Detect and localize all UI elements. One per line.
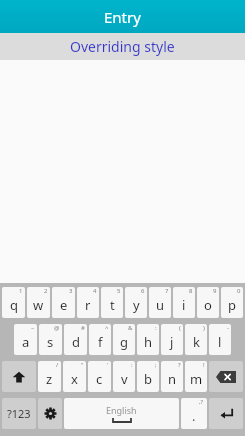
staticText: ~ — [31, 324, 35, 332]
staticText: a — [22, 333, 30, 351]
staticText: y — [133, 296, 140, 314]
staticText: 5 — [117, 287, 121, 295]
staticText: c — [96, 370, 103, 388]
staticText: l — [218, 333, 222, 351]
staticText: 8 — [189, 287, 193, 295]
staticText: 4 — [93, 287, 97, 295]
button[interactable]: " — [63, 361, 86, 392]
button[interactable]: Backspace — [209, 361, 243, 392]
button[interactable]: ( — [161, 324, 183, 355]
staticText: ? — [178, 361, 181, 369]
button[interactable]: @ — [39, 324, 62, 355]
staticText: p — [228, 296, 236, 314]
button[interactable]: ^ — [89, 324, 111, 355]
staticText: ; — [155, 361, 157, 369]
button[interactable]: 7 — [149, 287, 171, 318]
button[interactable]: 8 — [173, 287, 195, 318]
staticText: f — [98, 333, 103, 351]
staticText: 1 — [19, 287, 23, 295]
staticText: x — [71, 370, 78, 388]
button[interactable]: - — [209, 324, 231, 355]
staticText: w — [33, 296, 44, 314]
button[interactable]: : — [113, 361, 135, 392]
button[interactable]: 4 — [77, 287, 99, 318]
button[interactable]: Enter — [209, 398, 243, 429]
button[interactable]: ! — [185, 361, 207, 392]
staticText: . — [192, 407, 196, 425]
staticText: i — [182, 296, 186, 314]
staticText: z — [46, 370, 53, 388]
staticText: 0 — [237, 287, 241, 295]
button[interactable]: : — [137, 324, 159, 355]
button[interactable]: ) — [185, 324, 207, 355]
staticText: ,? — [199, 398, 204, 406]
staticText: t — [110, 296, 115, 314]
button[interactable]: 3 — [52, 287, 75, 318]
button[interactable]: 0 — [221, 287, 243, 318]
button[interactable]: ? — [161, 361, 183, 392]
staticText: " — [81, 361, 84, 369]
staticText: q — [10, 296, 18, 314]
staticText: Overriding style — [70, 37, 175, 56]
button[interactable]: 6 — [125, 287, 147, 318]
button[interactable]: 5 — [101, 287, 123, 318]
staticText: & — [128, 324, 133, 332]
staticText: : — [155, 324, 157, 332]
button[interactable]: ; — [137, 361, 159, 392]
staticText: e — [60, 296, 68, 314]
staticText: ! — [203, 361, 205, 369]
staticText: b — [144, 370, 152, 388]
staticText: - — [227, 324, 229, 332]
staticText: ^ — [105, 324, 109, 332]
staticText: n — [168, 370, 177, 388]
staticText: g — [120, 333, 128, 351]
staticText: 6 — [141, 287, 145, 295]
button[interactable]: Shift — [2, 361, 36, 392]
staticText: English — [106, 404, 137, 416]
button[interactable]: ?123 — [2, 398, 36, 429]
button[interactable]: # — [64, 324, 87, 355]
staticText: d — [72, 333, 80, 351]
staticText: / — [56, 361, 59, 369]
button[interactable]: ' — [88, 361, 111, 392]
button[interactable]: 2 — [27, 287, 50, 318]
staticText: j — [170, 333, 174, 351]
staticText: s — [47, 333, 54, 351]
staticText: 3 — [69, 287, 73, 295]
staticText: ) — [203, 324, 205, 332]
button[interactable]: English — [64, 398, 179, 429]
staticText: 9 — [213, 287, 217, 295]
staticText: v — [121, 370, 128, 388]
staticText: m — [190, 370, 203, 388]
staticText: Entry — [104, 7, 141, 27]
staticText: 7 — [165, 287, 169, 295]
staticText: # — [81, 324, 85, 332]
staticText: k — [193, 333, 200, 351]
staticText: @ — [54, 324, 60, 332]
button[interactable]: Settings — [38, 398, 62, 429]
button[interactable]: ~ — [14, 324, 37, 355]
staticText: ' — [107, 361, 109, 369]
staticText: u — [156, 296, 165, 314]
button[interactable]: ,? — [181, 398, 207, 429]
staticText: : — [131, 361, 133, 369]
staticText: h — [144, 333, 153, 351]
staticText: r — [85, 296, 91, 314]
button[interactable]: 9 — [197, 287, 219, 318]
button[interactable]: / — [38, 361, 61, 392]
staticText: o — [204, 296, 212, 314]
button[interactable]: 1 — [2, 287, 25, 318]
staticText: ( — [179, 324, 181, 332]
button[interactable]: & — [113, 324, 135, 355]
staticText: 2 — [44, 287, 48, 295]
staticText: ?123 — [7, 406, 31, 421]
